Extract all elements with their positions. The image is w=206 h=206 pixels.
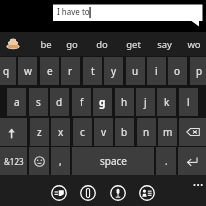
staticText: x bbox=[58, 125, 64, 139]
staticText: e bbox=[47, 64, 53, 78]
staticText: v bbox=[101, 125, 107, 139]
button[interactable]: s bbox=[29, 88, 48, 116]
staticText: t bbox=[91, 64, 95, 78]
button[interactable]: Emoji bbox=[0, 64, 26, 88]
staticText: &123 bbox=[4, 156, 24, 167]
staticText: d bbox=[56, 95, 63, 109]
button[interactable]: x bbox=[51, 118, 70, 146]
staticText: i bbox=[155, 64, 158, 78]
staticText: j bbox=[144, 95, 147, 109]
button[interactable]: b bbox=[115, 118, 134, 146]
button[interactable]: Emoji keyboard bbox=[1, 32, 25, 56]
button[interactable]: , bbox=[51, 147, 70, 175]
staticText: I have to bbox=[57, 6, 90, 17]
button[interactable]: . bbox=[156, 147, 176, 175]
button[interactable]: Shift bbox=[0, 118, 27, 146]
button[interactable]: v bbox=[94, 118, 113, 146]
button[interactable]: y bbox=[104, 57, 123, 85]
staticText: n bbox=[143, 125, 150, 139]
staticText: z bbox=[37, 125, 42, 139]
button[interactable]: w bbox=[18, 57, 37, 85]
button[interactable]: i bbox=[147, 57, 166, 85]
staticText: wo bbox=[187, 38, 201, 51]
staticText: m bbox=[163, 125, 173, 139]
staticText: q bbox=[3, 64, 10, 78]
staticText: get bbox=[126, 38, 141, 51]
button[interactable]: n bbox=[137, 118, 156, 146]
button[interactable]: Enter bbox=[178, 147, 206, 175]
staticText: g bbox=[99, 95, 106, 109]
button[interactable]: do bbox=[88, 32, 116, 56]
staticText: l bbox=[187, 95, 190, 109]
staticText: do bbox=[96, 38, 108, 51]
staticText: r bbox=[68, 64, 73, 78]
staticText: o bbox=[174, 64, 181, 78]
staticText: c bbox=[80, 125, 85, 139]
staticText: . bbox=[165, 154, 168, 168]
button[interactable]: t bbox=[83, 57, 102, 85]
button[interactable]: g bbox=[93, 88, 112, 116]
button[interactable]: go bbox=[58, 32, 86, 56]
button[interactable]: p bbox=[190, 57, 206, 85]
button[interactable]: Emoji bbox=[29, 147, 49, 175]
button[interactable]: be bbox=[32, 32, 60, 56]
staticText: a bbox=[14, 95, 20, 109]
button[interactable]: Attach file bbox=[77, 182, 99, 204]
staticText: , bbox=[59, 154, 62, 168]
staticText: go bbox=[66, 38, 78, 51]
button[interactable]: Backspace bbox=[179, 118, 206, 146]
button[interactable]: h bbox=[115, 88, 134, 116]
staticText: h bbox=[121, 95, 128, 109]
button[interactable]: z bbox=[30, 118, 49, 146]
button[interactable]: Voice input bbox=[107, 182, 129, 204]
button[interactable]: j bbox=[136, 88, 155, 116]
staticText: b bbox=[121, 125, 128, 139]
button[interactable]: space bbox=[72, 147, 154, 175]
button[interactable]: q bbox=[0, 57, 16, 85]
staticText: k bbox=[164, 95, 170, 109]
button[interactable]: f bbox=[72, 88, 91, 116]
staticText: p bbox=[196, 64, 203, 78]
button[interactable]: l bbox=[179, 88, 198, 116]
staticText: y bbox=[111, 64, 117, 78]
button[interactable]: say bbox=[150, 32, 178, 56]
button[interactable]: u bbox=[126, 57, 145, 85]
staticText: f bbox=[80, 95, 84, 109]
button[interactable]: a bbox=[7, 88, 26, 116]
button[interactable]: o bbox=[168, 57, 187, 85]
staticText: s bbox=[36, 95, 41, 109]
staticText: space bbox=[100, 154, 127, 168]
button[interactable]: k bbox=[157, 88, 176, 116]
button[interactable]: c bbox=[73, 118, 92, 146]
button[interactable]: m bbox=[158, 118, 177, 146]
button[interactable]: More options bbox=[190, 178, 206, 194]
button[interactable]: Translate bbox=[136, 182, 158, 204]
button[interactable]: &123 bbox=[0, 147, 27, 175]
staticText: u bbox=[132, 64, 139, 78]
button[interactable]: r bbox=[61, 57, 80, 85]
staticText: w bbox=[24, 64, 32, 78]
staticText: say bbox=[157, 38, 172, 51]
button[interactable]: d bbox=[50, 88, 69, 116]
staticText: be bbox=[40, 38, 52, 51]
button[interactable]: Stickers bbox=[48, 182, 70, 204]
button[interactable]: get bbox=[119, 32, 147, 56]
button[interactable]: wo bbox=[180, 32, 206, 56]
button[interactable]: e bbox=[40, 57, 59, 85]
